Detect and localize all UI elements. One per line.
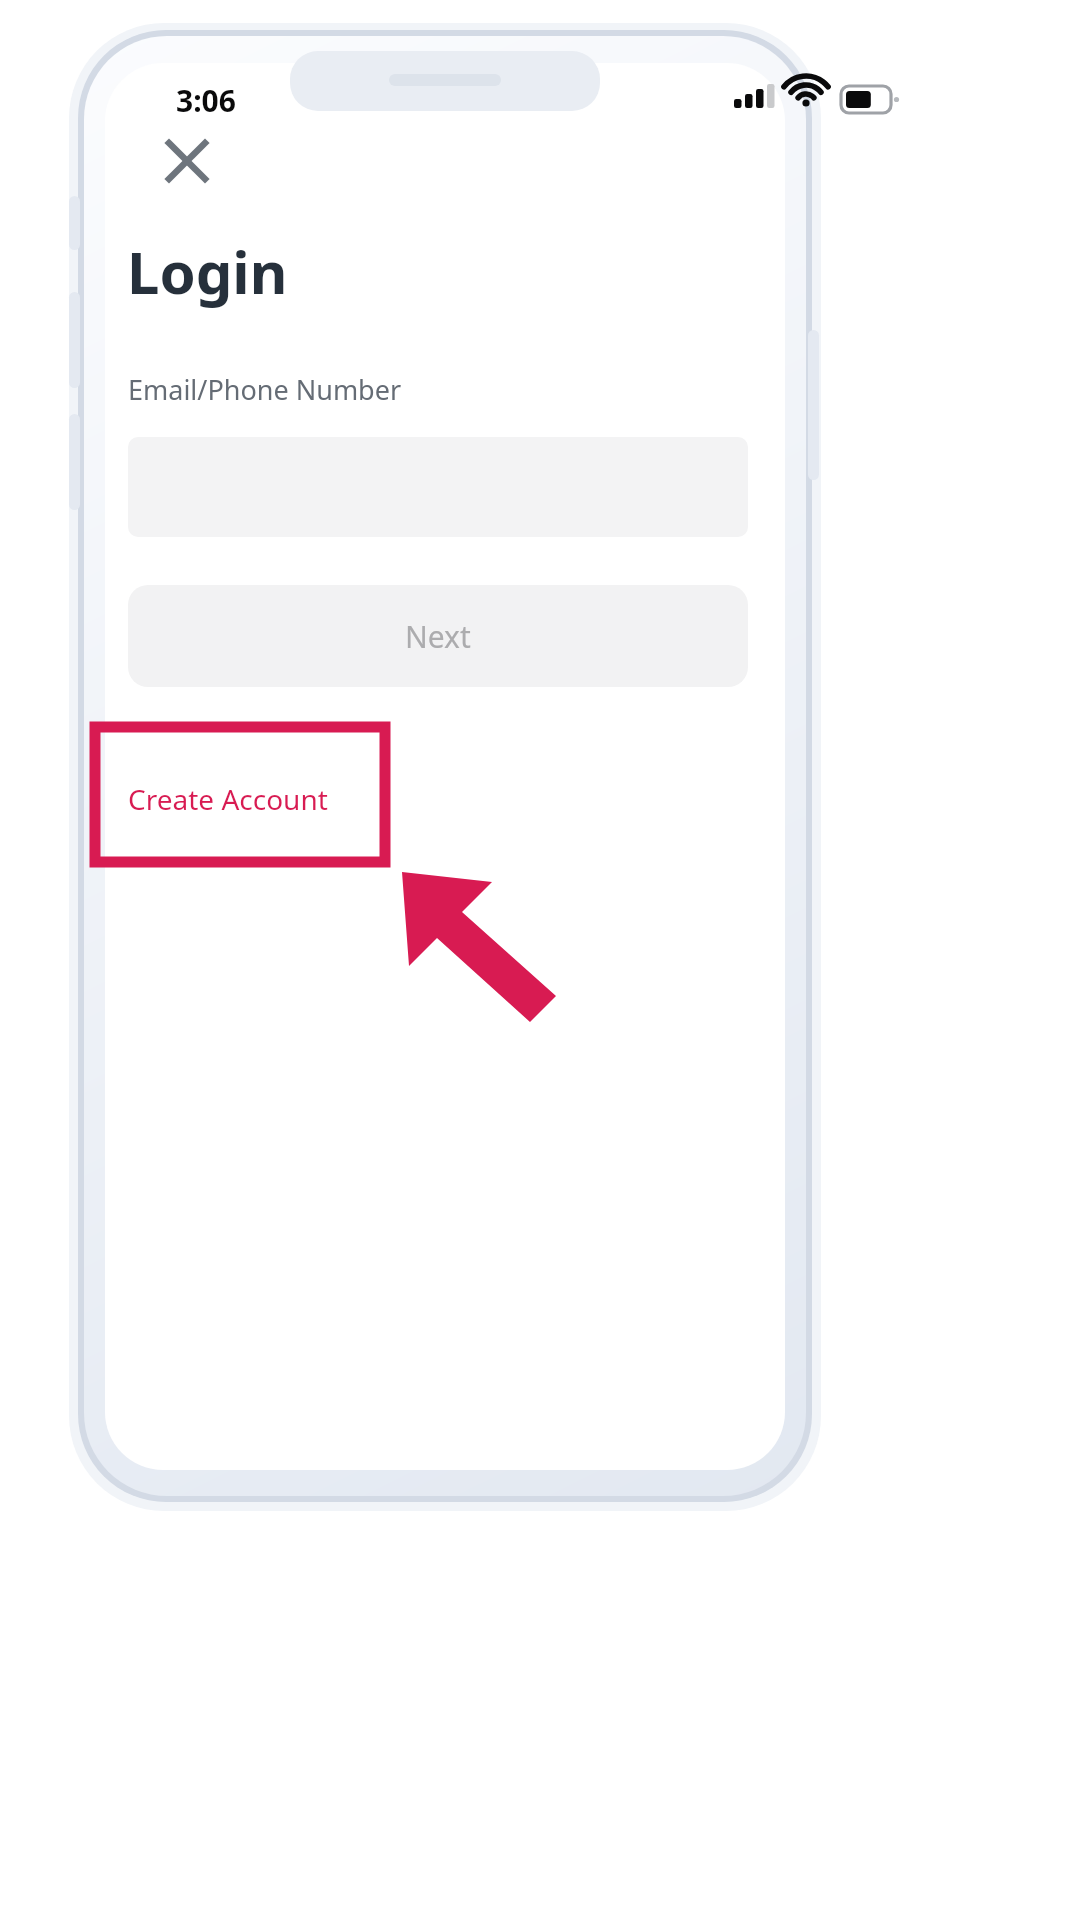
button[interactable]: Next (128, 585, 748, 687)
staticText: Create Account (128, 780, 328, 818)
button[interactable]: Close (152, 126, 222, 196)
staticText: Email/Phone Number (128, 371, 402, 408)
staticText: Login (127, 232, 288, 311)
button[interactable]: Create Account (128, 760, 548, 838)
staticText: Next (405, 616, 471, 657)
staticText: 3:06 (176, 80, 236, 121)
